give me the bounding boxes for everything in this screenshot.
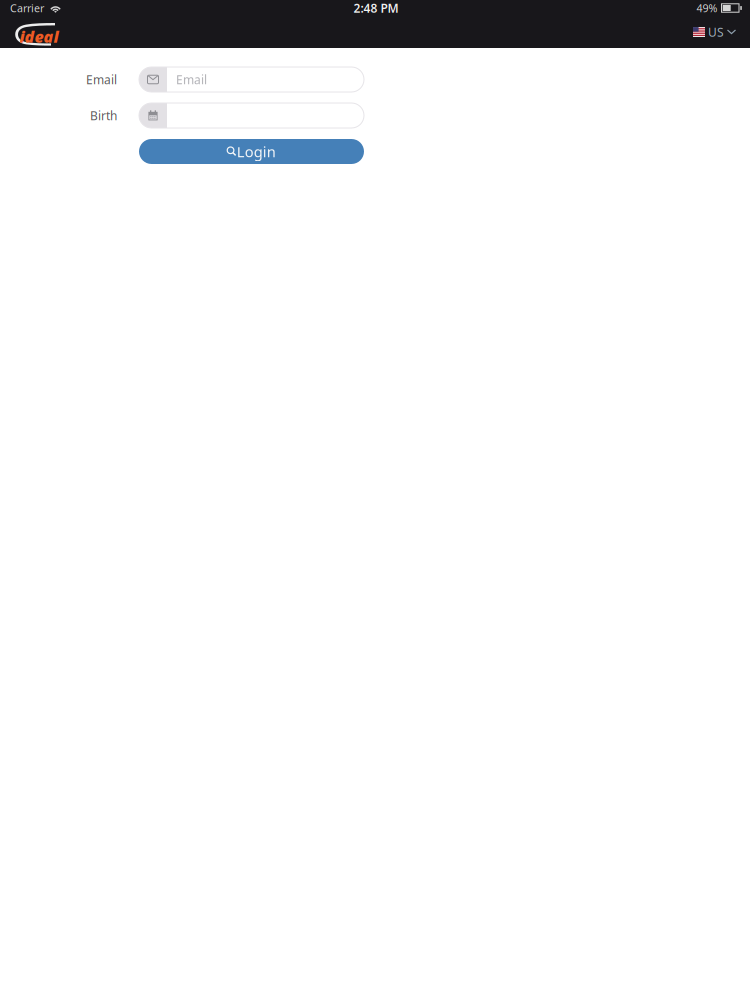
button[interactable]: ideal home bbox=[14, 16, 66, 48]
staticText: Email bbox=[176, 71, 207, 87]
staticText: Carrier bbox=[10, 1, 44, 15]
staticText: ideal bbox=[19, 26, 58, 47]
button[interactable]: Birth date bbox=[139, 103, 364, 128]
staticText: Birth bbox=[90, 107, 117, 123]
staticText: US bbox=[708, 24, 724, 40]
staticText: 49% bbox=[696, 1, 717, 15]
staticText: 2:48 PM bbox=[353, 0, 398, 16]
button[interactable]: Email bbox=[139, 67, 364, 92]
button[interactable]: Language: US bbox=[693, 24, 736, 40]
button[interactable]: Login bbox=[139, 139, 364, 164]
staticText: Login bbox=[237, 142, 276, 161]
staticText: Email bbox=[86, 71, 117, 87]
